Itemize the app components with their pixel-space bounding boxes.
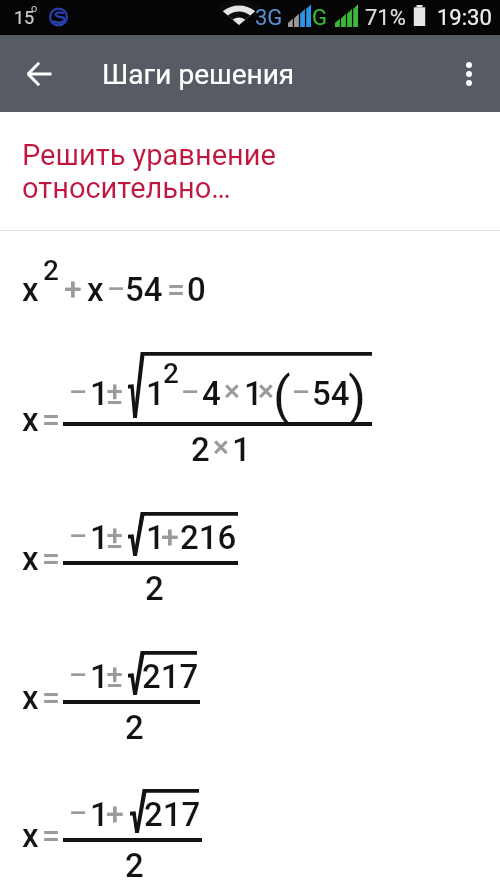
staticText: × (258, 373, 274, 408)
staticText: 2 (191, 430, 210, 469)
staticText: x (22, 400, 39, 439)
staticText: – (69, 520, 87, 553)
staticText: 54 (312, 374, 350, 413)
button[interactable]: More options (441, 35, 497, 112)
staticText: 1 (90, 657, 109, 696)
staticText: 217 (144, 795, 201, 834)
staticText: 2 (43, 254, 59, 287)
staticText: 4 (202, 374, 221, 413)
staticText: = (42, 816, 60, 854)
staticText: Шаги решения (102, 58, 295, 91)
staticText: 2 (163, 357, 179, 390)
staticText: = (167, 270, 185, 308)
staticText: 71% (365, 5, 406, 31)
staticText: Решить уравнение (22, 138, 276, 172)
staticText: 1 (146, 374, 165, 413)
staticText: – (69, 659, 87, 692)
staticText: G (312, 5, 327, 31)
staticText: ) (348, 366, 367, 427)
staticText: 2 (125, 708, 144, 747)
staticText: 1 (146, 518, 165, 557)
staticText: 2 (125, 846, 144, 885)
staticText: 1 (90, 518, 109, 557)
staticText: – (292, 376, 310, 409)
staticText: 3G (255, 5, 283, 31)
staticText: 1 (90, 795, 109, 834)
staticText: + (106, 795, 124, 833)
staticText: 2 (145, 569, 164, 608)
staticText: × (213, 429, 229, 464)
button[interactable]: Back (8, 35, 70, 112)
staticText: 216 (180, 518, 237, 557)
staticText: ( (273, 366, 291, 427)
staticText: o (31, 2, 38, 15)
staticText: x (87, 270, 104, 309)
staticText: – (69, 376, 87, 409)
staticText: – (181, 376, 199, 409)
staticText: 54 (125, 270, 163, 309)
staticText: – (69, 797, 87, 830)
staticText: = (42, 400, 60, 438)
staticText: относительно… (22, 171, 231, 205)
staticText: × (224, 373, 240, 408)
staticText: 1 (90, 374, 109, 413)
staticText: x (22, 678, 39, 717)
staticText: ± (106, 657, 124, 695)
staticText: 15 (14, 7, 35, 28)
staticText: 1 (244, 374, 263, 413)
staticText: x (22, 816, 39, 855)
staticText: 19:30 (437, 5, 492, 31)
staticText: x (22, 270, 39, 309)
staticText: 1 (232, 430, 251, 469)
staticText: ± (106, 518, 124, 556)
staticText: 0 (187, 270, 206, 309)
staticText: – (107, 273, 125, 306)
staticText: 217 (142, 657, 199, 696)
staticText: x (22, 539, 39, 578)
staticText: = (42, 539, 60, 577)
staticText: + (161, 518, 179, 556)
staticText: + (64, 270, 82, 308)
staticText: ± (106, 374, 124, 412)
staticText: = (42, 678, 60, 716)
